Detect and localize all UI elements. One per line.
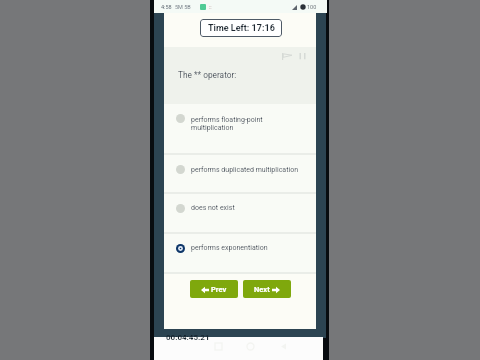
staticText: 00:04:45.21 (166, 333, 210, 342)
staticText: Prev (211, 285, 227, 294)
staticText: 4:58 (161, 4, 172, 10)
staticText: 5M 5B (175, 4, 191, 10)
button[interactable]: performs floating-point multiplication (164, 104, 316, 153)
button[interactable]: performs duplicated multiplication (164, 155, 316, 192)
staticText: performs duplicated multiplication (191, 166, 298, 174)
staticText: Time Left: 17:16 (208, 23, 275, 34)
staticText: :: (209, 4, 212, 10)
staticText: performs floating-point multiplication (191, 116, 263, 132)
staticText: 100 (307, 4, 317, 10)
staticText: does not exist (191, 204, 235, 212)
button[interactable]: Recent apps (211, 339, 225, 353)
button[interactable]: does not exist (164, 194, 316, 232)
button[interactable]: Next (243, 280, 291, 298)
staticText: Next (254, 285, 270, 294)
button[interactable]: Time Left: 17:16 (200, 19, 282, 37)
staticText: The ** operator: (178, 70, 237, 80)
staticText: performs exponentiation (191, 244, 268, 252)
button[interactable]: performs exponentiation (164, 234, 316, 272)
button[interactable]: Home (243, 339, 257, 353)
button[interactable]: Prev (190, 280, 238, 298)
